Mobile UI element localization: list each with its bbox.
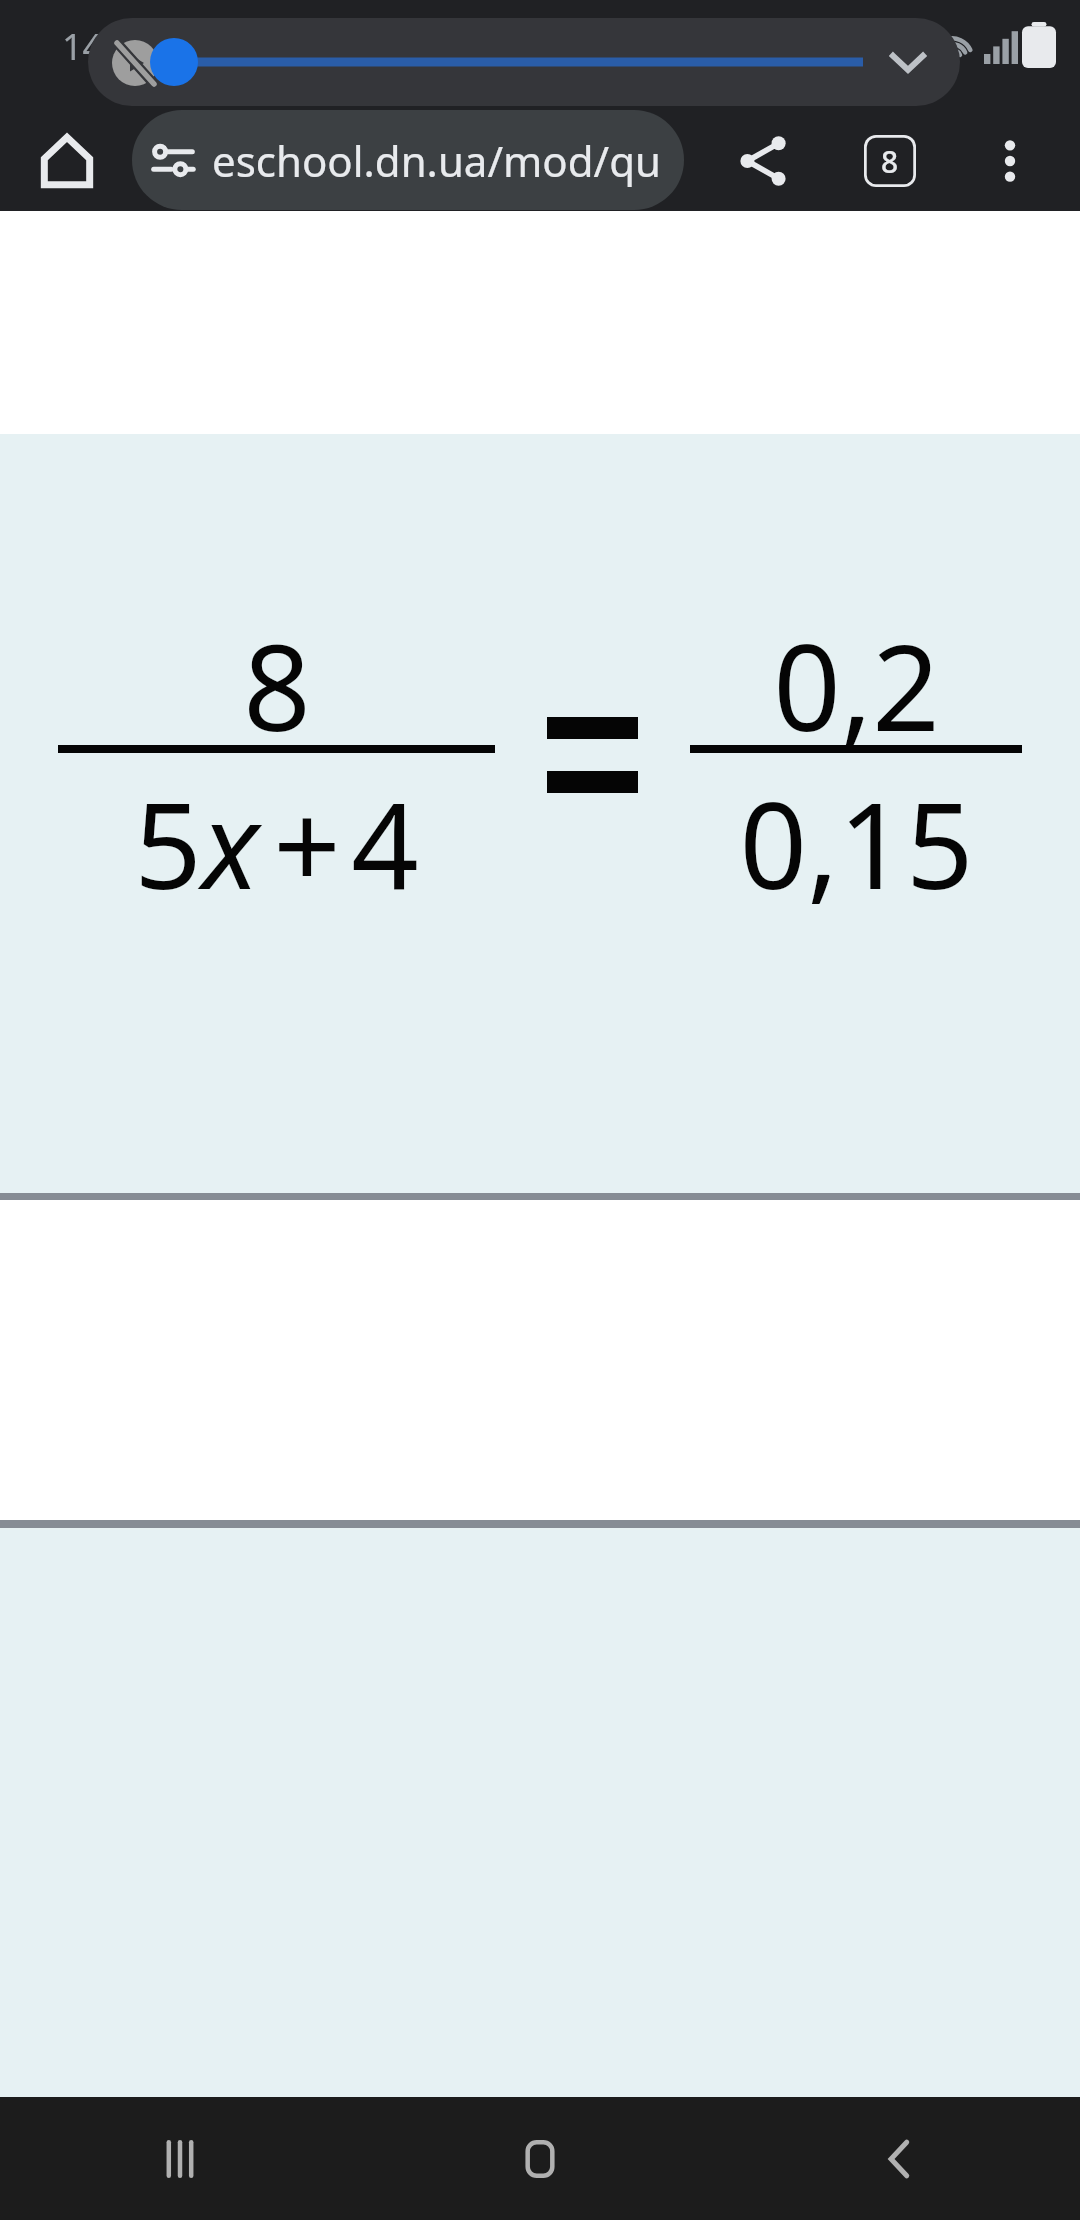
button[interactable]: Switch tabs, 8 open: [845, 116, 935, 206]
button[interactable]: Back: [720, 2097, 1080, 2220]
button[interactable]: Recent apps: [0, 2097, 360, 2220]
button[interactable]: More options: [965, 116, 1055, 206]
staticText: eschool.dn.ua/mod/qu: [212, 132, 661, 189]
button[interactable]: eschool.dn.ua/mod/qu: [132, 110, 684, 210]
staticText: 4: [351, 763, 419, 924]
button[interactable]: Volume: [150, 38, 198, 86]
button[interactable]: Expand volume controls: [878, 32, 938, 92]
staticText: 8: [243, 605, 311, 766]
staticText: x: [202, 763, 259, 924]
staticText: 14:56: [62, 22, 155, 71]
other: Mute: [110, 38, 160, 88]
staticText: 0,15: [739, 763, 974, 924]
button[interactable]: Share: [718, 116, 808, 206]
button[interactable]: Mute: [88, 18, 960, 106]
staticText: 0,2: [773, 605, 940, 766]
button[interactable]: Home: [360, 2097, 720, 2220]
staticText: +: [273, 763, 341, 924]
button[interactable]: Home: [22, 116, 112, 206]
staticText: 5: [134, 763, 202, 924]
staticText: 8: [881, 141, 899, 182]
